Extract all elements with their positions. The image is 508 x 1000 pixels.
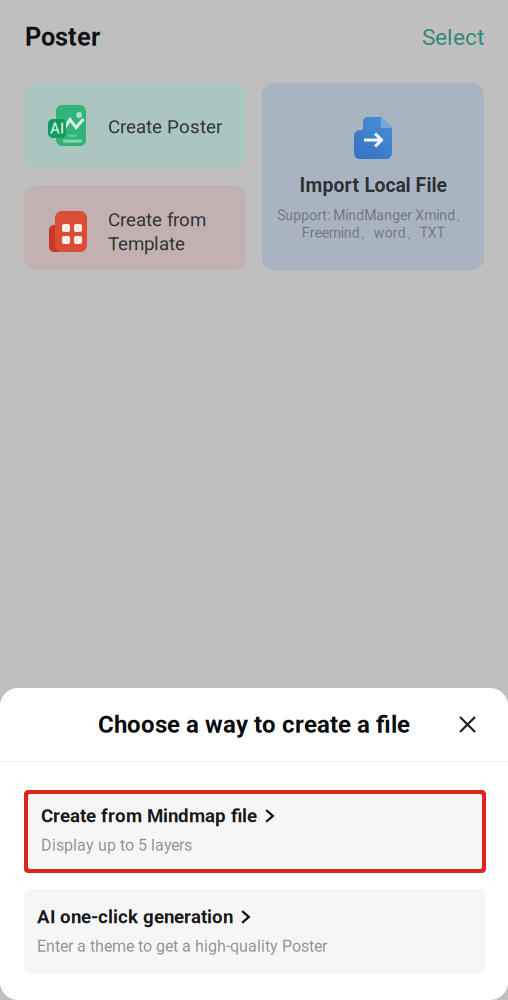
button[interactable]: Create from Mindmap file (24, 790, 486, 873)
button[interactable]: Close (448, 705, 487, 744)
staticText: Create from Mindmap file (41, 805, 257, 827)
staticText: Select (422, 24, 484, 50)
button[interactable]: Create from (24, 185, 246, 270)
staticText: AI one-click generation (37, 906, 233, 928)
staticText: Create from (108, 209, 206, 231)
button[interactable]: AI (24, 83, 246, 168)
staticText: Import Local File (299, 174, 446, 197)
staticText: Choose a way to create a file (98, 710, 410, 738)
button[interactable]: Import Local File (262, 83, 484, 270)
staticText: AI (50, 120, 64, 137)
staticText: Display up to 5 layers (41, 836, 192, 855)
staticText: Create Poster (108, 116, 222, 138)
staticText: Support: MindManger Xmind、Freemind、word、… (277, 207, 469, 242)
button[interactable]: AI one-click generation (24, 889, 486, 973)
button[interactable]: Select (422, 24, 484, 50)
staticText: Template (108, 233, 185, 255)
staticText: Poster (25, 22, 100, 52)
staticText: Enter a theme to get a high-quality Post… (37, 937, 327, 956)
